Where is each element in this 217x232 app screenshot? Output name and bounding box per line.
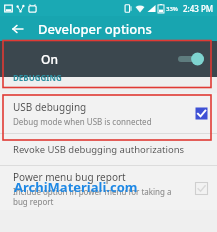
button[interactable]: Back: [8, 19, 28, 39]
staticText: USB debugging: [13, 100, 87, 114]
staticText: Power menu bug report: [13, 170, 126, 184]
staticText: ArchiMateriali.com: [14, 178, 138, 196]
button[interactable]: Power menu bug report: [0, 166, 217, 210]
staticText: On: [41, 51, 58, 67]
button[interactable]: USB debugging: [0, 93, 217, 133]
staticText: Revoke USB debugging authorizations: [13, 143, 185, 156]
staticText: DEBUGGING: [13, 72, 62, 83]
button[interactable]: Revoke USB debugging authorizations: [0, 134, 217, 165]
staticText: 2:43 PM: [183, 3, 214, 14]
button[interactable]: On: [0, 41, 217, 77]
staticText: Developer options: [38, 20, 152, 38]
staticText: Debug mode when USB is connected: [13, 116, 152, 127]
staticText: 33%: [166, 5, 178, 13]
staticText: Include option in power menu for taking …: [13, 186, 172, 207]
